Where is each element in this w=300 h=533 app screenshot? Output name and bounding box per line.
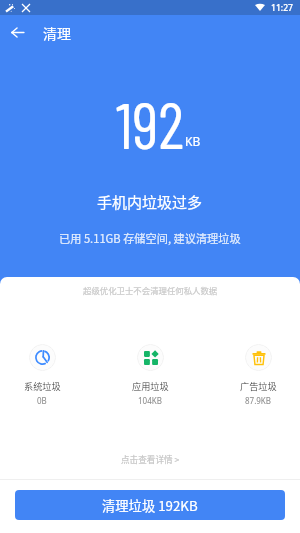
staticText: KB <box>185 133 201 149</box>
staticText: 超级优化卫士不会清理任何私人数据 <box>83 284 218 296</box>
button[interactable]: Back <box>0 15 35 50</box>
staticText: 87.9KB <box>245 395 272 406</box>
staticText: 11:27 <box>271 2 294 14</box>
button[interactable]: 广告垃圾 <box>230 344 286 406</box>
staticText: 系统垃圾 <box>24 379 61 392</box>
staticText: 应用垃圾 <box>132 379 169 392</box>
staticText: 点击查看详情 > <box>121 453 180 465</box>
staticText: 清理 <box>43 23 71 43</box>
staticText: 104KB <box>138 395 162 406</box>
staticText: 已用 5.11GB 存储空间, 建议清理垃圾 <box>59 230 241 246</box>
staticText: 192 <box>116 85 184 162</box>
staticText: 清理垃圾 192KB <box>102 496 198 515</box>
button[interactable]: 点击查看详情 > <box>107 447 194 471</box>
staticText: 手机内垃圾过多 <box>97 191 203 213</box>
button[interactable]: 清理垃圾 192KB <box>15 490 285 520</box>
button[interactable]: 系统垃圾 <box>14 344 70 406</box>
staticText: 广告垃圾 <box>240 379 277 392</box>
button[interactable]: 应用垃圾 <box>122 344 178 406</box>
staticText: 0B <box>37 395 47 406</box>
